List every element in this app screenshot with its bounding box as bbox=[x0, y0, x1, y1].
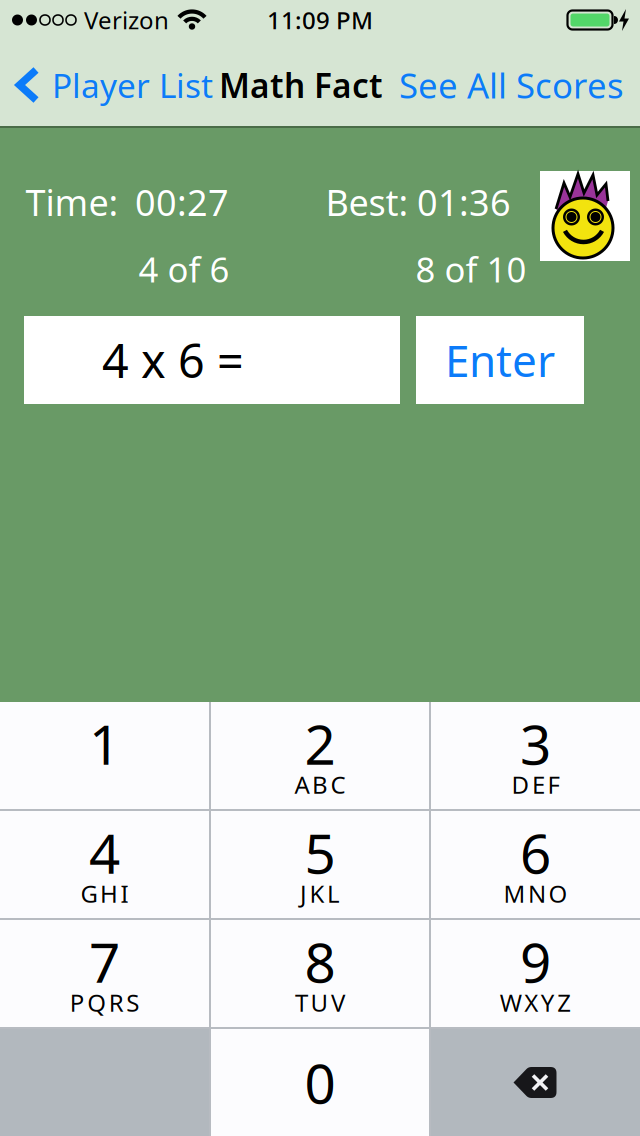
staticText: 3 bbox=[520, 707, 551, 780]
button[interactable]: 2 bbox=[211, 702, 429, 809]
staticText: 8 of 10 bbox=[415, 246, 526, 292]
staticText: 9 bbox=[520, 925, 551, 998]
staticText: 6 bbox=[520, 816, 551, 889]
staticText: 4 x 6 = bbox=[102, 329, 244, 391]
staticText: 7 bbox=[89, 925, 120, 998]
staticText: See All Scores bbox=[399, 62, 624, 108]
button[interactable]: 4 bbox=[0, 811, 209, 918]
staticText: 1 bbox=[89, 707, 120, 780]
staticText: Player List bbox=[52, 63, 213, 107]
staticText: DEF bbox=[511, 769, 559, 800]
staticText: 11:09 PM bbox=[267, 4, 373, 36]
staticText: 0 bbox=[304, 1046, 335, 1119]
staticText: Verizon bbox=[84, 4, 169, 36]
staticText: Math Fact bbox=[219, 63, 383, 107]
staticText: 2 bbox=[304, 707, 335, 780]
button[interactable]: 9 bbox=[431, 920, 640, 1027]
staticText: PQRS bbox=[70, 987, 139, 1018]
staticText: 01:36 bbox=[417, 178, 511, 226]
staticText: TUV bbox=[295, 987, 345, 1018]
button[interactable]: 4 x 6 = bbox=[24, 316, 400, 404]
staticText: Time: bbox=[25, 178, 118, 226]
button[interactable]: 7 bbox=[0, 920, 209, 1027]
staticText: ABC bbox=[294, 769, 345, 800]
button[interactable]: 3 bbox=[431, 702, 640, 809]
staticText: Enter bbox=[445, 331, 555, 389]
staticText: 4 of 6 bbox=[138, 246, 229, 292]
button[interactable]: 8 bbox=[211, 920, 429, 1027]
staticText: Best: bbox=[325, 178, 408, 226]
staticText: JKL bbox=[300, 878, 340, 909]
staticText: 4 bbox=[89, 816, 120, 889]
button[interactable]: See All Scores bbox=[399, 62, 624, 108]
staticText: 5 bbox=[304, 816, 335, 889]
button[interactable]: 6 bbox=[431, 811, 640, 918]
staticText: WXYZ bbox=[500, 987, 571, 1018]
staticText: 8 bbox=[304, 925, 335, 998]
staticText: MNO bbox=[503, 878, 567, 909]
button[interactable]: 5 bbox=[211, 811, 429, 918]
staticText: GHI bbox=[80, 878, 128, 909]
button[interactable]: Enter bbox=[416, 316, 584, 404]
button[interactable]: 1 bbox=[0, 702, 209, 809]
button[interactable]: 0 bbox=[211, 1029, 429, 1136]
button[interactable]: Delete bbox=[431, 1029, 640, 1136]
button[interactable]: Back to Player List bbox=[15, 63, 213, 107]
staticText: 00:27 bbox=[135, 178, 229, 226]
